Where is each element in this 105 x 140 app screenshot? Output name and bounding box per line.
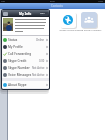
button[interactable]: My Profile (3, 43, 48, 50)
button[interactable]: Skype Credit (3, 57, 48, 64)
staticText: Voice Messages (8, 73, 32, 77)
button[interactable]: Voice Messages (3, 71, 48, 78)
staticText: Contacts (51, 4, 63, 8)
staticText: Not Active (32, 66, 45, 70)
staticText: My Info (19, 12, 32, 16)
staticText: 0.00 (39, 59, 45, 63)
button[interactable]: Online Contacts (54, 12, 82, 34)
staticText: Skype Number (8, 66, 30, 70)
staticText: My Profile (8, 45, 23, 49)
button[interactable]: Skype Number (3, 64, 48, 71)
button[interactable]: Saved Phone Numbers (75, 12, 103, 34)
staticText: 100% (98, 0, 104, 3)
staticText: Online Contacts (54, 29, 82, 32)
staticText: Not Active (32, 73, 45, 77)
staticText: About Skype (8, 83, 27, 87)
button[interactable]: About Skype (3, 81, 48, 88)
staticText: Saved Phone Numbers (75, 29, 103, 32)
button[interactable]: Status (3, 36, 48, 43)
staticText: 09:41 (50, 0, 56, 3)
staticText: WiFi (1, 0, 6, 3)
staticText: Online (36, 38, 45, 42)
staticText: Sign Out (40, 12, 48, 16)
staticText: Call Forwarding (8, 52, 32, 56)
button[interactable]: Call Forwarding (3, 50, 48, 57)
staticText: Skype Credit (8, 59, 27, 63)
staticText: Status (8, 38, 18, 42)
button[interactable]: Sign Out (40, 12, 48, 16)
button[interactable]: Edit profile (3, 12, 8, 16)
